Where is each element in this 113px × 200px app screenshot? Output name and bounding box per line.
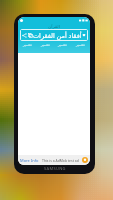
button[interactable]: Copy <box>28 33 33 38</box>
button[interactable]: Share <box>22 33 27 38</box>
button[interactable]: More Info <box>18 155 90 165</box>
staticText: أفقاد أمن الفقرات <box>33 31 82 40</box>
staticText: القرآن <box>48 24 60 29</box>
staticText: تفسير <box>23 43 32 47</box>
button[interactable]: Favorite <box>82 33 86 38</box>
staticText: SAMSUNG <box>44 166 66 171</box>
staticText: تفسير <box>58 43 67 47</box>
button[interactable]: Share <box>20 29 88 41</box>
staticText: تفسير <box>76 43 85 47</box>
staticText: This is a AdMob test ad <box>42 158 79 163</box>
staticText: تفسير <box>41 43 50 47</box>
staticText: More Info <box>20 158 39 163</box>
